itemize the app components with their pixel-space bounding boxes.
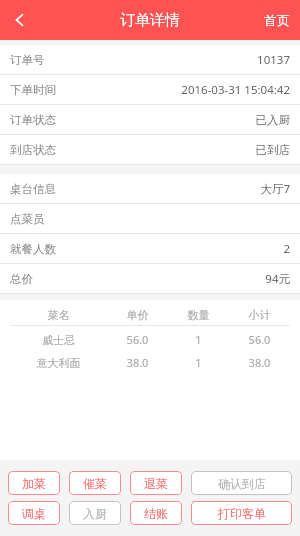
staticText: 56.0 bbox=[107, 332, 168, 347]
staticText: 56.0 bbox=[229, 332, 290, 347]
staticText: 订单详情 bbox=[120, 11, 180, 30]
staticText: 已到店 bbox=[56, 143, 290, 157]
staticText: 下单时间 bbox=[10, 83, 56, 97]
button[interactable]: 确认到店 bbox=[191, 471, 292, 495]
button[interactable]: 下单时间 bbox=[0, 75, 300, 105]
staticText: 总价 bbox=[10, 272, 33, 286]
staticText: 小计 bbox=[229, 308, 290, 322]
staticText: 退菜 bbox=[144, 476, 168, 491]
button[interactable]: 结账 bbox=[130, 501, 182, 525]
staticText: 打印客单 bbox=[218, 506, 266, 521]
staticText: 桌台信息 bbox=[10, 182, 56, 196]
button[interactable]: 加菜 bbox=[8, 471, 60, 495]
button[interactable]: Back bbox=[0, 0, 40, 40]
staticText: 确认到店 bbox=[218, 476, 266, 491]
button[interactable]: 订单号 bbox=[0, 45, 300, 75]
staticText: 1 bbox=[168, 355, 229, 370]
staticText: 单价 bbox=[107, 308, 168, 322]
staticText: 威士忌 bbox=[10, 333, 107, 347]
staticText: 结账 bbox=[144, 506, 168, 521]
button[interactable]: 到店状态 bbox=[0, 135, 300, 165]
staticText: 大厅7 bbox=[56, 181, 290, 197]
button[interactable]: 订单状态 bbox=[0, 105, 300, 135]
staticText: 点菜员 bbox=[10, 212, 45, 226]
staticText: 38.0 bbox=[107, 355, 168, 370]
button[interactable]: 催菜 bbox=[69, 471, 121, 495]
button[interactable]: 点菜员 bbox=[0, 204, 300, 234]
staticText: 2016-03-31 15:04:42 bbox=[56, 82, 290, 98]
staticText: 首页 bbox=[264, 12, 290, 28]
staticText: 到店状态 bbox=[10, 143, 56, 157]
staticText: 1 bbox=[168, 332, 229, 347]
staticText: 催菜 bbox=[83, 476, 107, 491]
staticText: 订单号 bbox=[10, 53, 45, 67]
staticText: 2 bbox=[56, 241, 290, 257]
staticText: 意大利面 bbox=[10, 356, 107, 370]
button[interactable]: 打印客单 bbox=[191, 501, 292, 525]
staticText: 94元 bbox=[33, 271, 290, 287]
button[interactable]: 退菜 bbox=[130, 471, 182, 495]
staticText: 已入厨 bbox=[56, 113, 290, 127]
button[interactable]: 首页 bbox=[254, 0, 300, 40]
button[interactable]: 桌台信息 bbox=[0, 174, 300, 204]
button[interactable]: 调桌 bbox=[8, 501, 60, 525]
staticText: 就餐人数 bbox=[10, 242, 56, 256]
staticText: 订单状态 bbox=[10, 113, 56, 127]
staticText: 10137 bbox=[45, 52, 290, 68]
button[interactable]: 就餐人数 bbox=[0, 234, 300, 264]
staticText: 菜名 bbox=[10, 308, 107, 322]
staticText: 38.0 bbox=[229, 355, 290, 370]
button[interactable]: 总价 bbox=[0, 264, 300, 294]
staticText: 入厨 bbox=[83, 506, 107, 521]
staticText: 加菜 bbox=[22, 476, 46, 491]
staticText: 数量 bbox=[168, 308, 229, 322]
staticText: 调桌 bbox=[22, 506, 46, 521]
button[interactable]: 入厨 bbox=[69, 501, 121, 525]
